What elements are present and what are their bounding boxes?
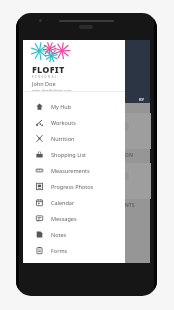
staticText: Notes: [51, 231, 67, 238]
staticText: Calendar: [51, 199, 75, 206]
staticText: Nutrition: [51, 135, 75, 142]
staticText: John Doe: [32, 80, 56, 87]
button[interactable]: Workouts: [23, 114, 125, 130]
staticText: Forms: [51, 247, 68, 254]
button[interactable]: Measurements: [23, 162, 125, 178]
staticText: P E R S O N A L: [32, 75, 57, 78]
button[interactable]: Forms: [23, 242, 125, 258]
staticText: john.doe@client.com: [32, 88, 72, 91]
staticText: Measurements: [51, 167, 90, 174]
staticText: FLOFIT: [32, 63, 65, 75]
button[interactable]: My Hub: [23, 98, 125, 114]
button[interactable]: Shopping List: [23, 146, 125, 162]
button[interactable]: Calendar: [23, 194, 125, 210]
staticText: Workouts: [51, 119, 76, 126]
button[interactable]: Notes: [23, 226, 125, 242]
staticText: Progress Photos: [51, 183, 94, 190]
staticText: Messages: [51, 215, 77, 222]
button[interactable]: Messages: [23, 210, 125, 226]
staticText: ON: [125, 152, 134, 159]
staticText: My Hub: [51, 103, 72, 110]
button[interactable]: Progress Photos: [23, 178, 125, 194]
button[interactable]: Nutrition: [23, 130, 125, 146]
staticText: ENTS: [122, 202, 135, 209]
staticText: RY: [139, 97, 145, 102]
staticText: Shopping List: [51, 151, 87, 158]
